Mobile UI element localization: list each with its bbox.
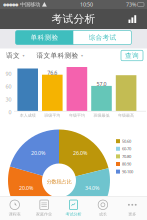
staticText: 年级最高	[118, 113, 134, 118]
button[interactable]: 综合考试	[73, 31, 131, 45]
staticText: 成长	[99, 212, 107, 217]
button[interactable]: 家庭作业	[29, 196, 59, 220]
staticText: 26.0%	[73, 149, 87, 157]
staticText: 60	[5, 83, 11, 90]
staticText: 单科测验	[30, 33, 58, 42]
staticText: 90	[5, 70, 11, 77]
staticText: 考试分析	[51, 12, 95, 25]
staticText: 班级平均	[44, 113, 60, 118]
staticText: 20.0%	[31, 149, 45, 157]
staticText: 班级最低	[93, 113, 109, 118]
staticText: 家庭作业	[36, 212, 52, 217]
staticText: 34.0%	[85, 184, 99, 192]
staticText: 查询	[125, 51, 139, 60]
button[interactable]: 考试分析	[59, 196, 88, 220]
button[interactable]: 更多	[118, 196, 147, 220]
button[interactable]: 单科测验	[15, 31, 73, 45]
button[interactable]: 课程表	[0, 196, 29, 220]
staticText: 80-90	[122, 161, 131, 167]
staticText: 57.0	[96, 80, 106, 87]
staticText: 课程表	[9, 212, 21, 217]
staticText: 更多	[128, 212, 136, 217]
button[interactable]: 查询	[121, 50, 143, 61]
staticText: 73%	[126, 1, 136, 8]
staticText: 90-100	[122, 169, 133, 174]
staticText: 30	[5, 96, 11, 103]
button[interactable]: 统计图表	[123, 9, 143, 29]
staticText: 60-70	[122, 146, 131, 151]
staticText: 10:50	[80, 1, 93, 8]
staticText: 综合考试	[88, 33, 116, 42]
staticText: 年级平均	[69, 113, 85, 118]
staticText: 分数段占比	[46, 178, 71, 185]
staticText: 语文单科测验	[36, 51, 78, 60]
staticText: 0	[8, 109, 11, 116]
button[interactable]: 语文单科测验	[34, 49, 85, 62]
staticText: ●●●●●	[3, 2, 18, 7]
staticText: ▾	[22, 53, 24, 58]
staticText: 语文	[6, 51, 20, 60]
staticText: 本人成绩	[20, 113, 36, 118]
staticText: 76.6	[47, 69, 57, 76]
button[interactable]: 成长	[88, 196, 118, 220]
staticText: 20.0%	[19, 184, 33, 192]
staticText: 50-60	[122, 138, 131, 144]
staticText: 70-80	[122, 154, 131, 159]
button[interactable]: 语文	[4, 49, 26, 62]
staticText: 考试分析	[65, 212, 81, 217]
staticText: ▾	[81, 53, 83, 58]
staticText: 中国移动	[18, 1, 42, 8]
